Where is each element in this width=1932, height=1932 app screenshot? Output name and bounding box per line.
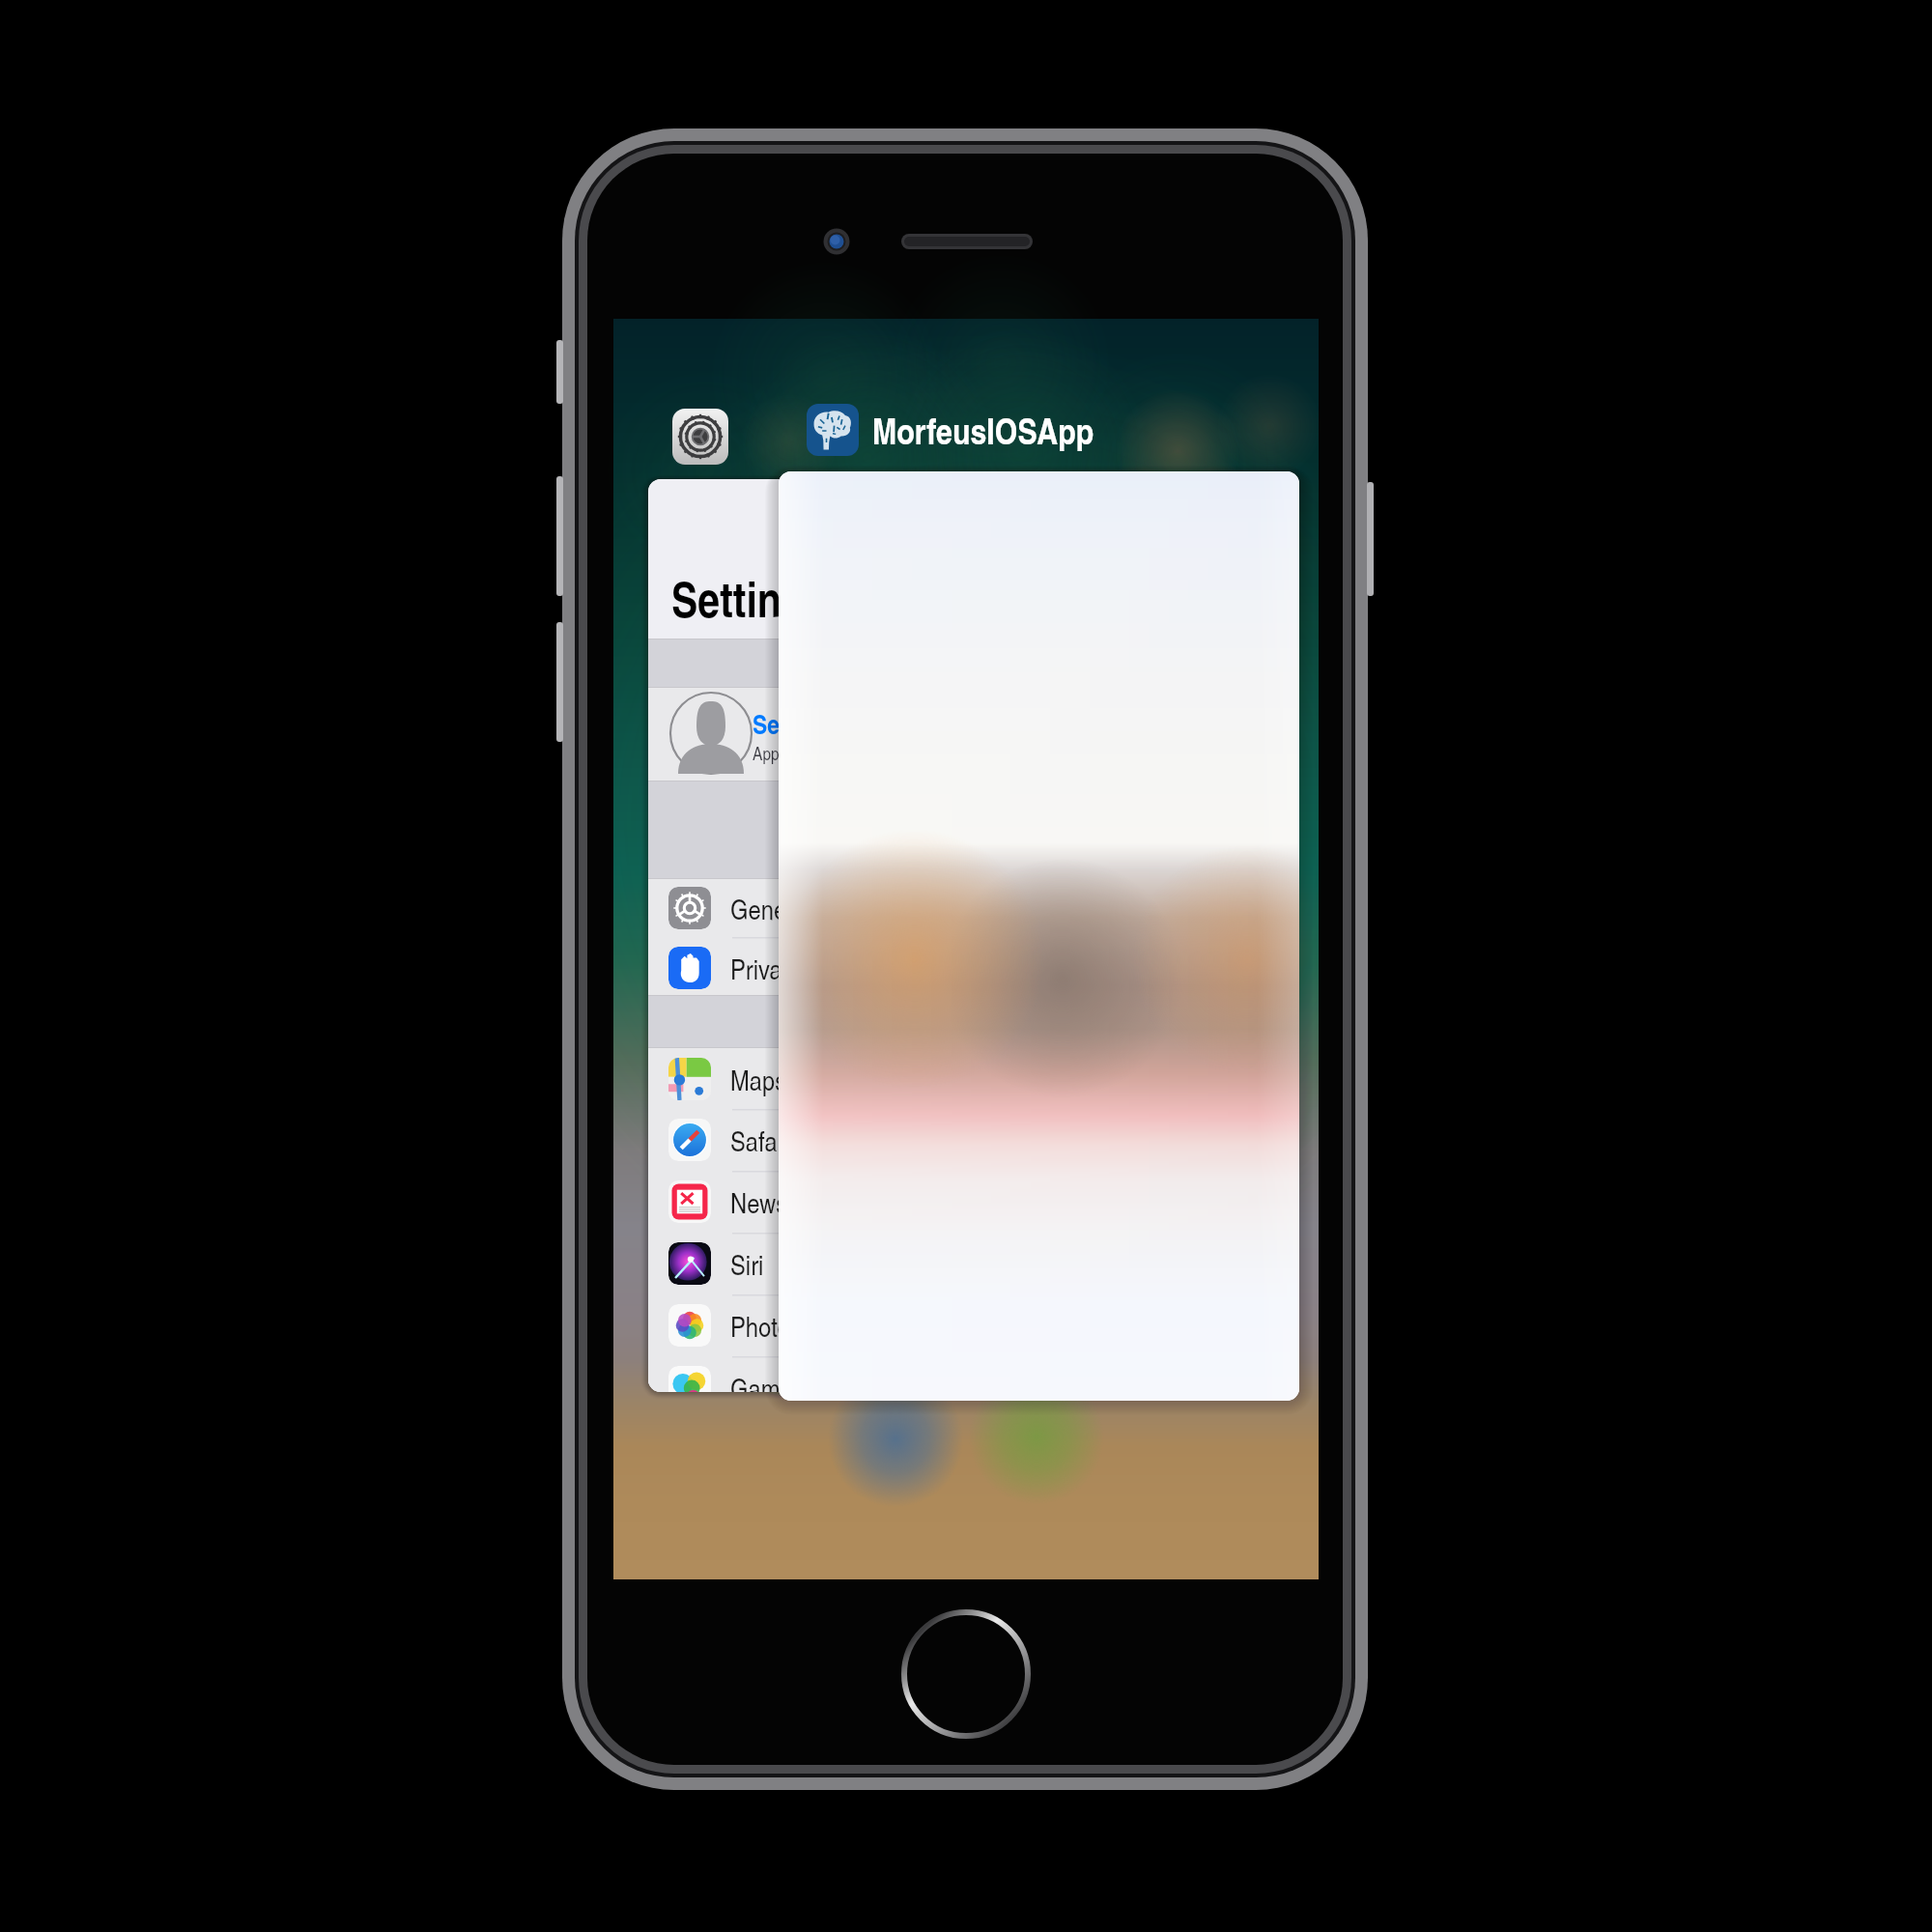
button[interactable] <box>779 471 1299 1401</box>
button[interactable]: Privacy <box>648 947 1189 989</box>
staticText: Apple ID, iCloud, iTunes <box>753 740 914 765</box>
staticText: Maps <box>730 1060 787 1098</box>
staticText: Game Center <box>730 1368 868 1392</box>
button[interactable]: Safari <box>648 1119 1189 1161</box>
button[interactable]: Maps <box>648 1058 1189 1100</box>
staticText: Settings <box>671 564 828 633</box>
button[interactable]: Settings app <box>672 409 728 465</box>
staticText: News <box>730 1182 788 1221</box>
staticText: Privacy <box>730 949 806 987</box>
staticText: Siri <box>730 1244 764 1283</box>
button[interactable]: Game Center <box>648 1366 1189 1392</box>
button[interactable]: Settings <box>648 479 1189 1392</box>
staticText: MorfeusIOSApp <box>872 405 1094 455</box>
staticText: Sergio <box>753 704 822 743</box>
button[interactable]: Home <box>901 1609 1031 1739</box>
button[interactable]: MorfeusIOSApp <box>807 404 1094 456</box>
button[interactable]: Photos <box>648 1304 1189 1347</box>
staticText: Photos <box>730 1306 802 1345</box>
staticText: Safari <box>730 1121 790 1159</box>
button[interactable]: Siri <box>648 1242 1189 1285</box>
button[interactable]: General <box>648 887 1189 929</box>
button[interactable]: News <box>648 1180 1189 1223</box>
staticText: General <box>730 889 812 927</box>
